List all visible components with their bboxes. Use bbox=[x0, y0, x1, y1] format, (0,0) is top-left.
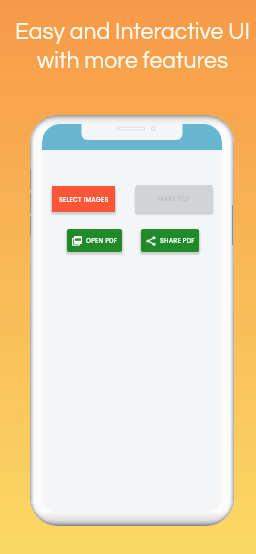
button[interactable]: SELECT IMAGES bbox=[52, 186, 115, 212]
button[interactable]: SHARE PDF bbox=[141, 229, 199, 252]
staticText: Easy and Interactive UI bbox=[15, 20, 250, 44]
button[interactable]: MAKE PDF bbox=[136, 185, 212, 212]
staticText: OPEN PDF bbox=[86, 236, 118, 245]
staticText: MAKE PDF bbox=[158, 194, 190, 203]
button[interactable]: OPEN PDF bbox=[67, 229, 122, 252]
staticText: with more features bbox=[37, 49, 228, 73]
staticText: SELECT IMAGES bbox=[59, 195, 109, 204]
staticText: SHARE PDF bbox=[160, 236, 195, 245]
